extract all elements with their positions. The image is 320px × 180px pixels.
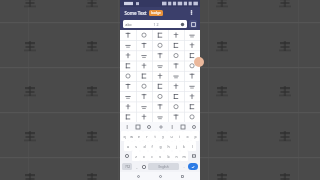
staticText: e xyxy=(138,134,140,139)
button[interactable]: o xyxy=(183,131,191,141)
button[interactable]: c xyxy=(148,151,156,161)
button[interactable]: w xyxy=(128,131,135,141)
button[interactable]: j xyxy=(172,141,180,151)
button[interactable]: , xyxy=(134,163,139,170)
button[interactable]: abc xyxy=(125,20,185,28)
button[interactable] xyxy=(136,72,152,82)
button[interactable] xyxy=(184,112,200,122)
button[interactable] xyxy=(136,82,152,92)
button[interactable] xyxy=(184,82,200,92)
button[interactable]: Home xyxy=(156,172,164,180)
button[interactable] xyxy=(184,52,200,62)
button[interactable]: m xyxy=(180,151,188,161)
button[interactable]: More options xyxy=(187,8,196,17)
button[interactable]: f xyxy=(148,141,156,151)
button[interactable] xyxy=(152,82,168,92)
button[interactable]: a xyxy=(124,141,132,151)
button[interactable] xyxy=(120,52,136,62)
button[interactable] xyxy=(136,102,152,112)
button[interactable] xyxy=(120,92,136,102)
button[interactable]: i xyxy=(175,131,183,141)
button[interactable] xyxy=(152,112,168,122)
button[interactable]: Recents xyxy=(178,172,186,180)
button[interactable] xyxy=(184,62,200,72)
button[interactable]: Clear xyxy=(180,22,185,27)
button[interactable]: p xyxy=(191,131,199,141)
button[interactable]: Language xyxy=(123,123,130,130)
button[interactable] xyxy=(168,92,184,102)
staticText: English xyxy=(158,165,169,169)
button[interactable]: h xyxy=(164,141,172,151)
button[interactable]: l xyxy=(188,141,196,151)
button[interactable]: v xyxy=(156,151,164,161)
button[interactable] xyxy=(120,30,136,41)
button[interactable] xyxy=(120,112,136,122)
button[interactable]: Backspace xyxy=(188,151,199,161)
button[interactable]: Settings xyxy=(145,123,152,130)
button[interactable]: Clipboard xyxy=(157,123,164,130)
button[interactable]: g xyxy=(156,141,164,151)
button[interactable]: Keyboard xyxy=(189,20,197,28)
button[interactable] xyxy=(136,112,152,122)
button[interactable] xyxy=(168,72,184,82)
button[interactable] xyxy=(152,62,168,72)
button[interactable] xyxy=(168,82,184,92)
button[interactable] xyxy=(120,72,136,82)
button[interactable]: Emoji xyxy=(141,163,146,170)
button[interactable] xyxy=(136,41,152,52)
button[interactable] xyxy=(168,102,184,112)
button[interactable] xyxy=(120,62,136,72)
button[interactable] xyxy=(120,102,136,112)
button[interactable] xyxy=(120,82,136,92)
staticText: c xyxy=(151,154,153,159)
button[interactable]: Enter xyxy=(188,163,198,170)
button[interactable]: s xyxy=(132,141,140,151)
button[interactable]: GIF xyxy=(168,123,175,130)
button[interactable] xyxy=(136,52,152,62)
button[interactable]: n xyxy=(172,151,180,161)
button[interactable] xyxy=(168,30,184,41)
button[interactable] xyxy=(136,92,152,102)
button[interactable]: Stickers xyxy=(134,123,141,130)
staticText: z xyxy=(135,154,137,159)
button[interactable] xyxy=(152,30,168,41)
button[interactable]: y xyxy=(159,131,167,141)
button[interactable] xyxy=(184,30,200,41)
button[interactable] xyxy=(168,52,184,62)
button[interactable]: t xyxy=(151,131,159,141)
button[interactable]: k xyxy=(180,141,188,151)
button[interactable]: b xyxy=(164,151,172,161)
button[interactable]: u xyxy=(167,131,175,141)
button[interactable]: Shift xyxy=(121,151,132,161)
button[interactable]: Back xyxy=(134,172,142,180)
button[interactable]: Symbols xyxy=(122,163,132,170)
button[interactable] xyxy=(152,52,168,62)
button[interactable]: q xyxy=(121,131,128,141)
button[interactable] xyxy=(136,62,152,72)
staticText: b xyxy=(167,154,170,159)
staticText: p xyxy=(194,134,197,139)
button[interactable] xyxy=(168,62,184,72)
button[interactable] xyxy=(184,41,200,52)
button[interactable] xyxy=(152,102,168,112)
button[interactable] xyxy=(136,30,152,41)
button[interactable] xyxy=(184,72,200,82)
button[interactable]: Space xyxy=(148,163,179,170)
button[interactable] xyxy=(184,92,200,102)
button[interactable]: x xyxy=(140,151,148,161)
button[interactable] xyxy=(168,41,184,52)
button[interactable] xyxy=(152,72,168,82)
button[interactable] xyxy=(152,92,168,102)
button[interactable]: Translate xyxy=(179,123,186,130)
button[interactable]: badge xyxy=(151,11,161,15)
button[interactable] xyxy=(168,112,184,122)
button[interactable]: Voice input xyxy=(190,123,197,130)
button[interactable] xyxy=(152,41,168,52)
button[interactable]: d xyxy=(140,141,148,151)
button[interactable] xyxy=(184,102,200,112)
button[interactable]: e xyxy=(135,131,143,141)
button[interactable] xyxy=(120,41,136,52)
button[interactable]: z xyxy=(132,151,140,161)
button[interactable]: r xyxy=(143,131,151,141)
